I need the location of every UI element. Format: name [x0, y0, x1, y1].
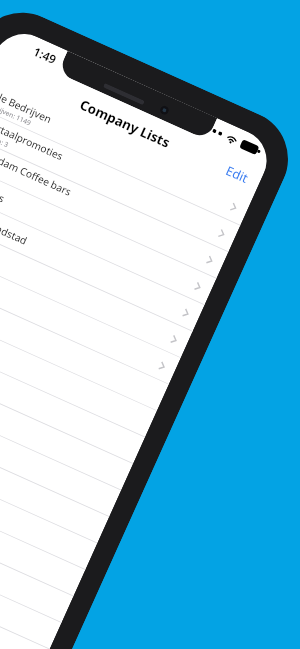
staticText: Company Lists: [77, 95, 173, 152]
button[interactable]: Edit: [209, 151, 265, 198]
staticText: Alle Bedrijven: [0, 86, 54, 126]
staticText: Bedrijven: 3: [0, 126, 11, 150]
staticText: Kwartaalpromoties: [0, 113, 66, 163]
staticText: Edit: [223, 162, 251, 187]
button[interactable]: Utrecht: [0, 237, 181, 385]
staticText: Coffee Bars: [0, 170, 7, 206]
button[interactable]: Breakfast Randstad: [0, 184, 205, 332]
button[interactable]: Shell petrol: [0, 211, 193, 358]
button[interactable]: Coffee Bars: [0, 158, 216, 305]
button[interactable]: Kwartaalpromoties: [0, 105, 240, 252]
button[interactable]: Amsterdam Coffee bars: [0, 131, 228, 279]
button[interactable]: Alle Bedrijven: [0, 78, 252, 226]
staticText: Bedrijven: 1149: [0, 99, 32, 128]
staticText: Bedrijven: 88: [0, 152, 2, 178]
staticText: Breakfast Randstad: [0, 197, 29, 248]
staticText: Amsterdam Coffee bars: [0, 139, 74, 199]
staticText: 1:49: [31, 43, 59, 67]
